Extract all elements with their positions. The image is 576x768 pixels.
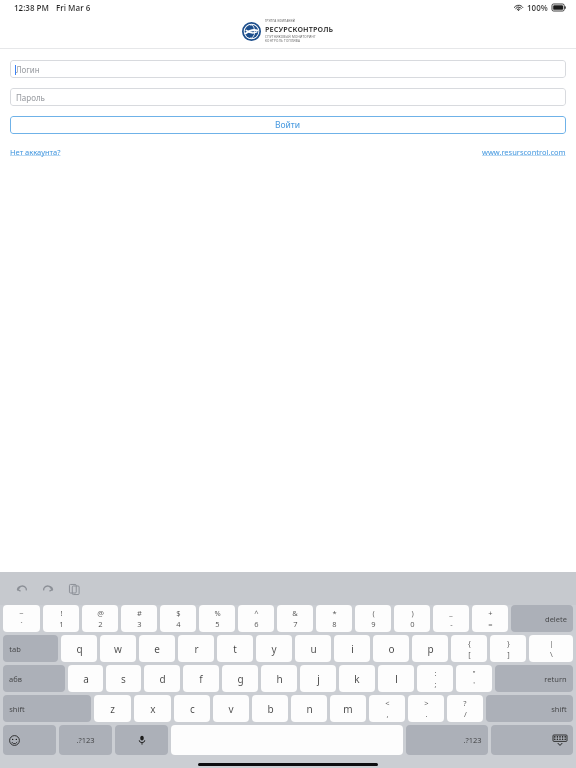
button[interactable]: tab xyxy=(3,635,58,662)
button[interactable]: Redo xyxy=(38,579,58,599)
button[interactable]: .?123 xyxy=(59,725,112,755)
staticText: ) xyxy=(411,608,414,618)
button[interactable]: $ xyxy=(160,605,196,632)
button[interactable]: < xyxy=(369,695,405,722)
staticText: " xyxy=(472,668,476,678)
button[interactable]: a xyxy=(68,665,103,692)
staticText: . xyxy=(425,709,428,719)
staticText: o xyxy=(388,642,395,656)
button[interactable]: v xyxy=(213,695,249,722)
button[interactable]: Undo xyxy=(12,579,32,599)
staticText: v xyxy=(228,702,234,716)
button[interactable]: z xyxy=(94,695,131,722)
button[interactable]: t xyxy=(217,635,253,662)
button[interactable]: ) xyxy=(394,605,430,632)
staticText: h xyxy=(276,672,283,686)
staticText: delete xyxy=(545,614,567,624)
button[interactable]: ( xyxy=(355,605,391,632)
button[interactable]: + xyxy=(472,605,508,632)
staticText: k xyxy=(354,672,360,686)
staticText: n xyxy=(306,702,313,716)
staticText: t xyxy=(233,642,237,656)
staticText: ( xyxy=(372,608,375,618)
button[interactable]: x xyxy=(134,695,171,722)
staticText: x xyxy=(150,702,156,716)
button[interactable]: q xyxy=(61,635,97,662)
staticText: # xyxy=(137,608,142,618)
staticText: f xyxy=(199,672,203,686)
button[interactable]: # xyxy=(121,605,157,632)
button[interactable]: { xyxy=(451,635,487,662)
button[interactable]: b xyxy=(252,695,288,722)
button[interactable]: s xyxy=(106,665,141,692)
button[interactable]: % xyxy=(199,605,235,632)
staticText: Нет аккаунта? xyxy=(10,147,61,157)
button[interactable]: > xyxy=(408,695,444,722)
button[interactable]: j xyxy=(300,665,336,692)
button[interactable]: y xyxy=(256,635,292,662)
staticText: 12:38 PM xyxy=(14,2,49,13)
staticText: СПУТНИКОВЫЙ МОНИТОРИНГ xyxy=(265,35,316,39)
button[interactable]: Нет аккаунта? xyxy=(10,147,61,157)
button[interactable]: shift xyxy=(3,695,91,722)
button[interactable]: w xyxy=(100,635,136,662)
staticText: 2 xyxy=(98,619,103,629)
button[interactable]: m xyxy=(330,695,366,722)
staticText: ^ xyxy=(254,608,259,618)
button[interactable]: | xyxy=(529,635,573,662)
button[interactable]: _ xyxy=(433,605,469,632)
button[interactable]: * xyxy=(316,605,352,632)
staticText: .?123 xyxy=(76,735,95,745)
button[interactable]: f xyxy=(183,665,219,692)
button[interactable]: Пароль xyxy=(10,88,566,106)
staticText: РЕСУРСКОНТРОЛЬ xyxy=(265,24,334,34)
button[interactable]: ! xyxy=(43,605,79,632)
button[interactable]: Hide keyboard xyxy=(491,725,573,755)
staticText: @ xyxy=(97,608,104,618)
button[interactable]: " xyxy=(456,665,492,692)
button[interactable]: .?123 xyxy=(406,725,488,755)
button[interactable]: : xyxy=(417,665,453,692)
staticText: ' xyxy=(473,679,475,689)
button[interactable]: delete xyxy=(511,605,573,632)
button[interactable]: l xyxy=(378,665,414,692)
button[interactable]: ^ xyxy=(238,605,274,632)
button[interactable]: o xyxy=(373,635,409,662)
button[interactable]: e xyxy=(139,635,175,662)
button[interactable]: ~ xyxy=(3,605,40,632)
button[interactable]: @ xyxy=(82,605,118,632)
staticText: e xyxy=(154,642,160,656)
button[interactable]: ? xyxy=(447,695,483,722)
button[interactable]: Emoji xyxy=(3,725,56,755)
staticText: Пароль xyxy=(16,92,45,103)
staticText: 100% xyxy=(527,2,548,13)
button[interactable]: Paste xyxy=(64,579,84,599)
staticText: Войти xyxy=(275,119,301,131)
staticText: = xyxy=(488,619,493,629)
staticText: КОНТРОЛЬ ТОПЛИВА xyxy=(265,39,301,43)
button[interactable]: n xyxy=(291,695,327,722)
button[interactable]: Логин xyxy=(10,60,566,78)
button[interactable]: return xyxy=(495,665,573,692)
staticText: > xyxy=(424,698,429,708)
button[interactable]: i xyxy=(334,635,370,662)
button[interactable]: Dictation xyxy=(115,725,168,755)
button[interactable]: www.resurscontrol.com xyxy=(482,147,566,157)
button[interactable]: u xyxy=(295,635,331,662)
button[interactable]: h xyxy=(261,665,297,692)
button[interactable]: p xyxy=(412,635,448,662)
button[interactable]: } xyxy=(490,635,526,662)
button[interactable]: k xyxy=(339,665,375,692)
staticText: Fri Mar 6 xyxy=(56,2,91,13)
button[interactable]: d xyxy=(144,665,180,692)
staticText: : xyxy=(434,668,437,678)
button[interactable]: Войти xyxy=(10,116,566,134)
button[interactable]: shift xyxy=(486,695,573,722)
button[interactable]: c xyxy=(174,695,210,722)
staticText: & xyxy=(292,608,298,618)
button[interactable]: & xyxy=(277,605,313,632)
button[interactable]: абв xyxy=(3,665,65,692)
button[interactable]: g xyxy=(222,665,258,692)
button[interactable]: r xyxy=(178,635,214,662)
